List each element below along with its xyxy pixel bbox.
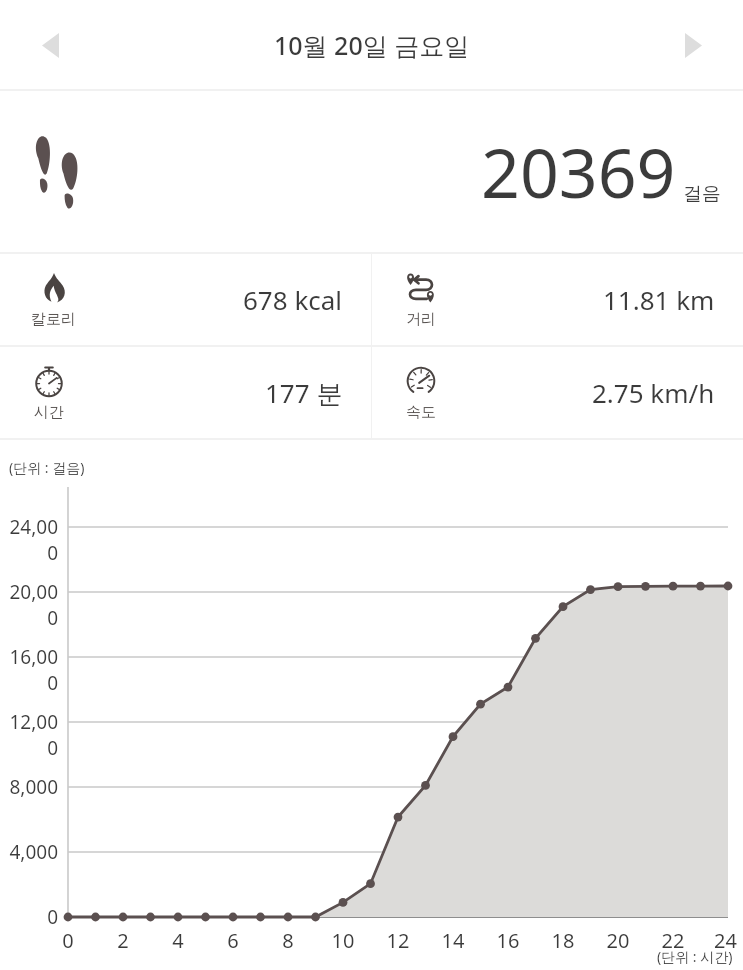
staticText: (단위 : 걸음) <box>9 458 85 477</box>
staticText: 거리 <box>406 310 436 329</box>
staticText: 걸음 <box>683 182 721 206</box>
staticText: 16 <box>488 927 528 954</box>
staticText: 10 <box>323 927 363 954</box>
button[interactable]: 거리 <box>372 254 743 345</box>
staticText: 20369 <box>481 125 676 218</box>
staticText: 속도 <box>406 403 436 422</box>
button[interactable]: 칼로리 <box>0 254 371 345</box>
staticText: 14 <box>433 927 473 954</box>
staticText: 8,000 <box>0 774 58 800</box>
staticText: 시간 <box>34 403 64 422</box>
staticText: 12,000 <box>0 709 58 761</box>
staticText: 16,000 <box>0 644 58 696</box>
staticText: 10월 20일 금요일 <box>274 28 470 62</box>
staticText: 678 kcal <box>243 282 343 317</box>
staticText: 4 <box>158 927 198 954</box>
staticText: 20,000 <box>0 579 58 631</box>
staticText: 2 <box>103 927 143 954</box>
staticText: 0 <box>48 927 88 954</box>
staticText: 0 <box>0 904 58 930</box>
staticText: 22 <box>653 927 693 954</box>
staticText: 11.81 km <box>603 282 715 317</box>
staticText: 12 <box>378 927 418 954</box>
button[interactable]: Next day <box>667 19 719 71</box>
button[interactable]: Previous day <box>24 19 76 71</box>
button[interactable]: 시간 <box>0 347 371 438</box>
staticText: 24 <box>708 927 743 954</box>
button[interactable]: 20369 <box>0 91 743 252</box>
staticText: 4,000 <box>0 839 58 865</box>
staticText: (단위 : 시간) <box>657 947 733 966</box>
staticText: 20 <box>598 927 638 954</box>
staticText: 24,000 <box>0 514 58 566</box>
staticText: 177 분 <box>265 375 343 411</box>
button[interactable]: 속도 <box>372 347 743 438</box>
staticText: 18 <box>543 927 583 954</box>
staticText: 칼로리 <box>31 310 76 329</box>
staticText: 2.75 km/h <box>592 375 715 410</box>
staticText: 6 <box>213 927 253 954</box>
staticText: 8 <box>268 927 308 954</box>
